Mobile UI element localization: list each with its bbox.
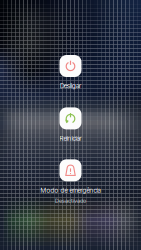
staticText: Modo de emergência: [40, 186, 100, 194]
staticText: Desactivado: [55, 197, 86, 204]
button[interactable]: Reiniciar: [59, 107, 81, 142]
staticText: Reiniciar: [59, 134, 81, 142]
button[interactable]: Modo de emergência: [40, 159, 100, 204]
staticText: Desligar: [60, 82, 81, 90]
button[interactable]: Desligar: [59, 55, 81, 90]
